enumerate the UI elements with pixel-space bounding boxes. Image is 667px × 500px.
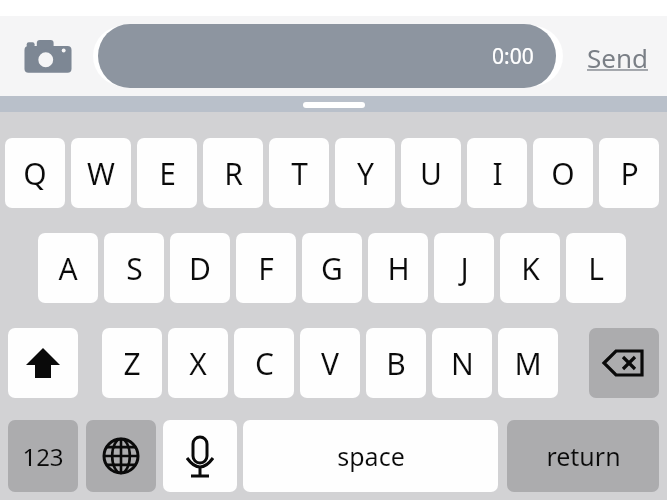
button[interactable]: Z [102,328,162,398]
button[interactable]: I [467,138,527,208]
staticText: space [337,439,405,473]
staticText: K [521,248,540,289]
staticText: X [189,343,207,384]
button[interactable]: Switch language [86,420,156,492]
staticText: return [546,439,621,473]
button[interactable]: Y [335,138,395,208]
button[interactable]: B [366,328,426,398]
button[interactable]: P [599,138,659,208]
staticText: R [224,153,243,194]
button[interactable]: E [137,138,197,208]
staticText: T [291,153,308,194]
button[interactable]: Dictate [163,420,237,492]
staticText: O [551,153,575,194]
button[interactable] [93,26,563,86]
staticText: G [321,248,343,289]
button[interactable]: R [203,138,263,208]
button[interactable]: return [507,420,659,492]
staticText: J [460,248,469,289]
staticText: M [514,343,542,384]
button[interactable]: V [300,328,360,398]
button[interactable]: F [236,233,296,303]
button[interactable]: M [498,328,558,398]
staticText: W [87,153,115,194]
button[interactable]: Backspace [589,328,659,398]
button[interactable]: X [168,328,228,398]
staticText: H [387,248,410,289]
button[interactable]: N [432,328,492,398]
button[interactable]: W [71,138,131,208]
button[interactable]: K [500,233,560,303]
button[interactable]: 123 [8,420,78,492]
button[interactable]: A [38,233,98,303]
staticText: S [126,248,143,289]
staticText: Send [587,40,648,75]
button[interactable]: Camera [20,34,76,80]
staticText: C [255,343,274,384]
staticText: F [258,248,274,289]
button[interactable]: 0:00 [98,24,556,88]
button[interactable]: Shift [8,328,78,398]
staticText: 0:00 [492,42,534,71]
button[interactable]: L [566,233,626,303]
staticText: 123 [22,440,64,473]
staticText: P [620,153,639,194]
staticText: A [58,248,78,289]
staticText: B [386,343,406,384]
staticText: I [492,153,503,194]
button[interactable]: T [269,138,329,208]
button[interactable]: G [302,233,362,303]
staticText: Q [23,153,47,194]
staticText: V [321,343,339,384]
button[interactable]: S [104,233,164,303]
staticText: Y [357,153,374,194]
button[interactable]: D [170,233,230,303]
button[interactable]: H [368,233,428,303]
button[interactable]: J [434,233,494,303]
button[interactable]: U [401,138,461,208]
button[interactable]: Q [5,138,65,208]
staticText: E [159,153,176,194]
button[interactable]: Send [578,38,656,76]
staticText: L [588,248,604,289]
staticText: N [451,343,474,384]
button[interactable]: C [234,328,294,398]
button[interactable]: O [533,138,593,208]
staticText: Z [123,343,141,384]
staticText: D [189,248,211,289]
staticText: U [420,153,442,194]
button[interactable]: space [243,420,498,492]
